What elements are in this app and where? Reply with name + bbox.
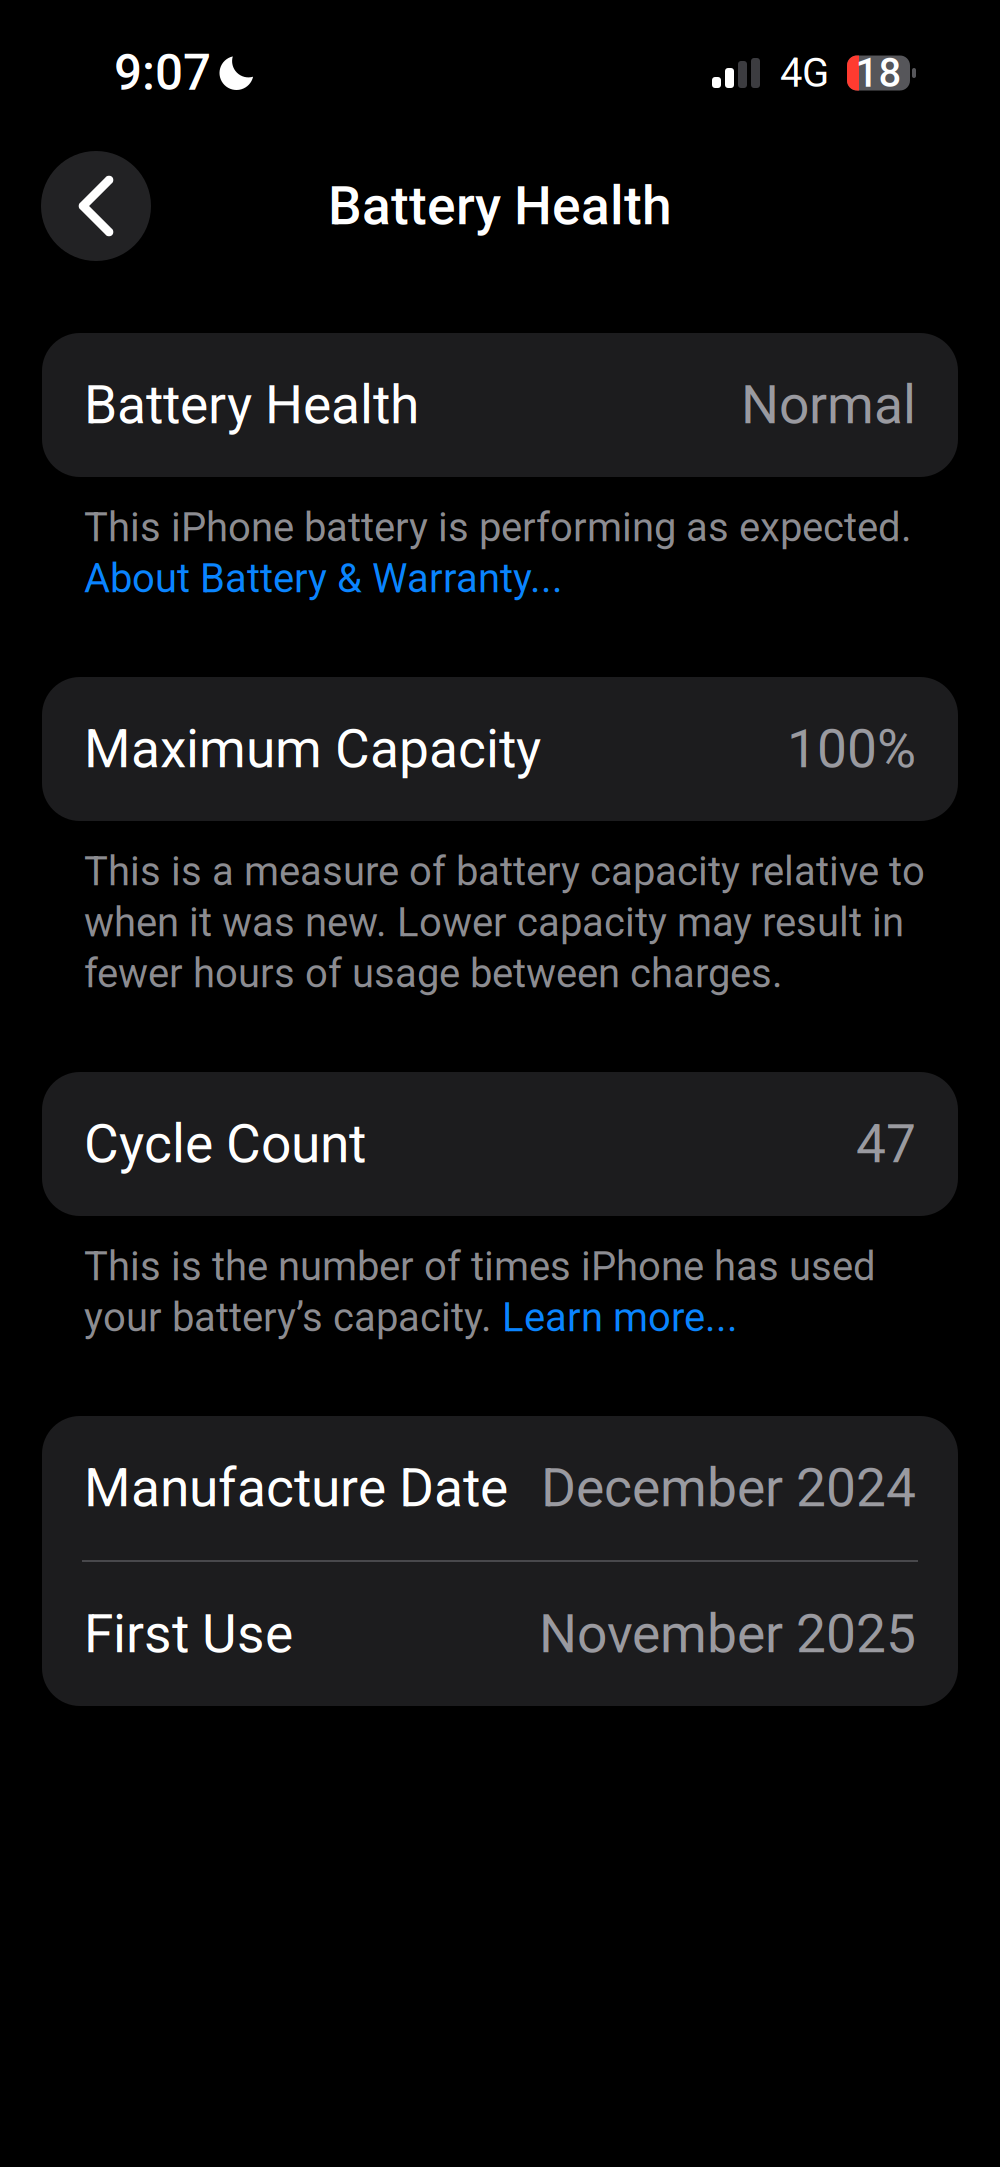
- staticText: First Use: [84, 1603, 293, 1665]
- staticText: This is the number of times iPhone has u…: [84, 1243, 876, 1290]
- staticText: December 2024: [541, 1457, 916, 1519]
- staticText: Cycle Count: [84, 1113, 366, 1175]
- staticText: 100%: [787, 718, 916, 780]
- staticText: Maximum Capacity: [84, 718, 541, 780]
- staticText: About Battery & Warranty...: [84, 555, 563, 602]
- staticText: This is a measure of battery capacity re…: [84, 848, 925, 895]
- button[interactable]: Learn more...: [502, 1294, 738, 1341]
- staticText: your battery’s capacity.: [84, 1294, 502, 1341]
- staticText: Battery Health: [84, 374, 419, 436]
- button[interactable]: First Use: [42, 1562, 958, 1706]
- staticText: 47: [856, 1113, 916, 1175]
- staticText: 9:07: [114, 44, 211, 102]
- staticText: Manufacture Date: [84, 1457, 508, 1519]
- button[interactable]: About Battery & Warranty...: [84, 555, 563, 602]
- staticText: This iPhone battery is performing as exp…: [84, 504, 912, 551]
- button[interactable]: Back: [41, 151, 151, 261]
- staticText: when it was new. Lower capacity may resu…: [84, 899, 904, 946]
- staticText: Normal: [741, 374, 916, 436]
- staticText: 18: [855, 50, 901, 96]
- button[interactable]: Manufacture Date: [42, 1416, 958, 1560]
- staticText: 4G: [780, 50, 829, 96]
- button[interactable]: Battery Health: [42, 333, 958, 477]
- button[interactable]: Cycle Count: [42, 1072, 958, 1216]
- button[interactable]: Maximum Capacity: [42, 677, 958, 821]
- staticText: November 2025: [539, 1603, 916, 1665]
- staticText: fewer hours of usage between charges.: [84, 950, 783, 997]
- staticText: Battery Health: [328, 175, 672, 237]
- staticText: Learn more...: [502, 1294, 738, 1341]
